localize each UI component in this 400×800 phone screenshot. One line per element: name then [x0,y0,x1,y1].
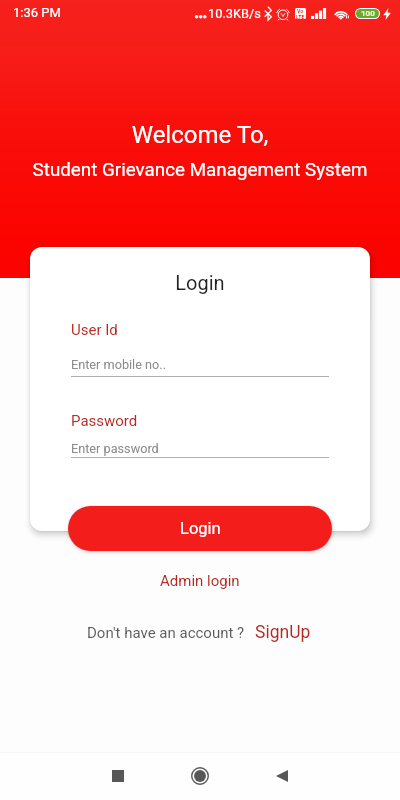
staticText: Enter mobile no.. [71,357,167,372]
staticText: Welcome To, [0,121,400,149]
staticText: Student Grievance Management System [0,159,400,181]
staticText: LTE [296,14,305,19]
staticText: Login [30,271,370,294]
staticText: Enter password [71,441,159,456]
staticText: SignUp [255,622,311,643]
staticText: Login [180,519,221,538]
staticText: 1:36 PM [13,5,61,20]
staticText: Password [71,412,138,430]
button[interactable]: SignUp [253,619,313,646]
staticText: Vo [297,8,304,14]
staticText: Admin login [160,572,240,590]
staticText: Don't have an account ? [87,624,245,642]
staticText: 100 [361,9,375,18]
staticText: 10.3KB/s [208,6,261,21]
button[interactable]: Home [176,752,224,800]
button[interactable]: Enter password [71,441,329,458]
button[interactable]: Enter mobile no.. [71,357,329,377]
button[interactable]: Admin login [150,568,250,594]
button[interactable]: Back [258,752,306,800]
button[interactable]: Recent apps [94,752,142,800]
staticText: User Id [71,321,118,339]
button[interactable]: Login [68,506,332,551]
